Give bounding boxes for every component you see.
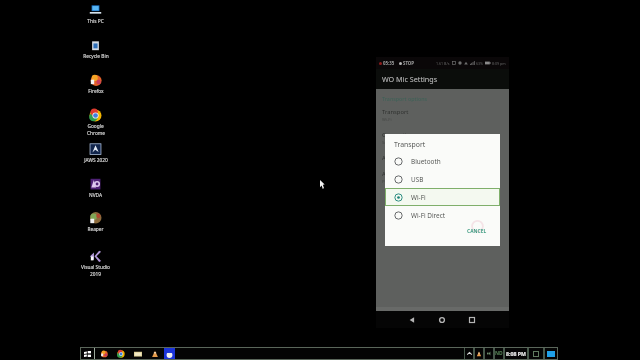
button[interactable]: Clock, 8:08 PM: [504, 347, 528, 360]
staticText: Google: [87, 123, 104, 130]
button[interactable]: This PC: [77, 4, 114, 25]
staticText: Settings: [382, 140, 398, 146]
button[interactable]: VLC media player: [148, 347, 161, 360]
button[interactable]: Wi-Fi: [385, 188, 500, 206]
staticText: 2019: [90, 271, 101, 278]
staticText: Visual Studio: [81, 264, 110, 271]
button[interactable]: Reaper: [77, 212, 114, 233]
staticText: JAWS 2020: [84, 157, 108, 164]
staticText: This PC: [87, 18, 104, 25]
staticText: Wi-Fi: [411, 193, 426, 202]
button[interactable]: Audio source: [376, 154, 509, 162]
staticText: CANCEL: [467, 228, 487, 235]
staticText: Connection: [382, 131, 414, 139]
staticText: Wi-Fi Direct: [411, 211, 446, 220]
button[interactable]: Transport: [376, 108, 509, 123]
button[interactable]: Recycle Bin: [77, 39, 114, 60]
button[interactable]: VLC media player: [474, 347, 484, 360]
staticText: STOP: [403, 60, 415, 66]
button[interactable]: Firefox: [77, 74, 114, 95]
staticText: Firefox: [88, 88, 104, 95]
button[interactable]: File Explorer: [131, 347, 144, 360]
staticText: Transport: [394, 140, 426, 149]
staticText: 05:35: [383, 60, 395, 66]
staticText: Transport: [382, 108, 409, 116]
staticText: Wi-Fi: [382, 117, 392, 123]
staticText: Audio source: [382, 154, 418, 162]
button[interactable]: Visual Studio 2019: [77, 250, 114, 278]
button[interactable]: Recents: [463, 311, 480, 328]
staticText: PCM 16bit: [382, 179, 403, 185]
button[interactable]: CANCEL: [463, 224, 491, 239]
button[interactable]: NVDA: [494, 347, 504, 360]
staticText: Recycle Bin: [83, 53, 109, 60]
button[interactable]: Connection: [376, 131, 509, 146]
button[interactable]: USB: [385, 170, 500, 188]
staticText: 63%: [476, 61, 484, 66]
button[interactable]: Show hidden icons: [464, 347, 474, 360]
staticText: 8:08 PM: [506, 350, 526, 357]
button[interactable]: WO Mic client: [164, 348, 175, 360]
button[interactable]: Start: [80, 347, 95, 360]
button[interactable]: Volume: [484, 347, 494, 360]
staticText: USB: [411, 175, 424, 184]
staticText: Reaper: [87, 226, 104, 233]
staticText: NVDA: [89, 192, 102, 199]
button[interactable]: Firefox: [97, 347, 110, 360]
staticText: Audio format: [382, 170, 419, 178]
button[interactable]: Bluetooth: [385, 152, 500, 170]
staticText: Chrome: [87, 130, 105, 137]
button[interactable]: Home: [433, 311, 450, 328]
button[interactable]: Google Chrome: [77, 109, 114, 137]
staticText: WO Mic Settings: [382, 74, 438, 84]
button[interactable]: Show desktop: [544, 347, 558, 360]
staticText: Transport options: [382, 95, 428, 102]
staticText: Bluetooth: [411, 157, 441, 166]
staticText: 8:09 pm: [492, 61, 506, 66]
button[interactable]: Action center: [528, 347, 544, 360]
button[interactable]: Audio format: [376, 170, 509, 185]
button[interactable]: Wi-Fi Direct: [385, 206, 500, 224]
button[interactable]: NVDA: [77, 178, 114, 199]
button[interactable]: Back: [403, 311, 420, 328]
staticText: 1.61 B/s: [436, 61, 450, 66]
staticText: ND: [495, 350, 503, 357]
button[interactable]: Google Chrome: [114, 347, 127, 360]
button[interactable]: JAWS 2020: [77, 143, 114, 164]
